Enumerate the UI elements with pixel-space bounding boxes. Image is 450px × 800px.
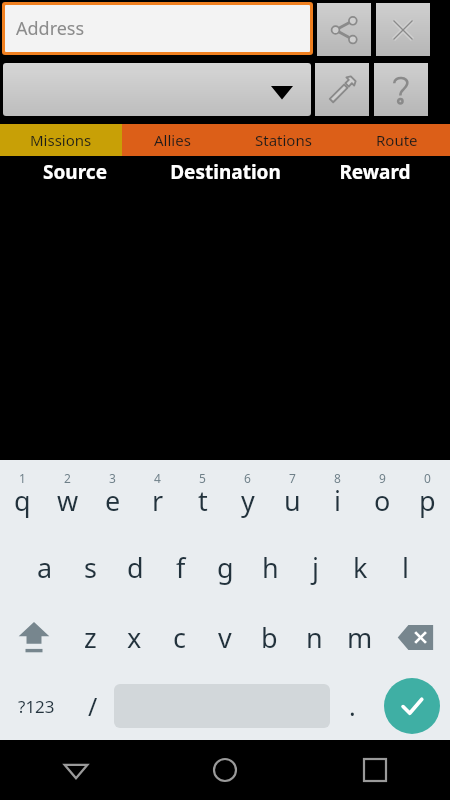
staticText: / [88,689,98,723]
button[interactable]: h [248,532,293,602]
button[interactable]: Settings [315,63,369,116]
button[interactable]: Back [0,740,150,800]
staticText: Address [16,16,85,41]
staticText: m [347,619,373,656]
button[interactable]: 1 [0,460,45,532]
staticText: t [198,482,208,519]
staticText: 2 [64,470,71,486]
button[interactable]: n [292,602,337,672]
button[interactable]: s [68,532,113,602]
button[interactable]: x [112,602,157,672]
button[interactable]: 0 [405,460,450,532]
staticText: x [127,619,142,656]
button[interactable]: ?123 [0,672,72,740]
button[interactable]: d [113,532,158,602]
staticText: n [306,619,323,656]
staticText: z [84,619,97,656]
staticText: 7 [289,470,296,486]
staticText: c [173,619,186,656]
button[interactable]: . [330,672,374,740]
button[interactable]: 4 [135,460,180,532]
button[interactable]: 2 [45,460,90,532]
button[interactable]: Allies [122,124,222,156]
staticText: Destination [170,159,281,185]
button[interactable]: b [247,602,292,672]
staticText: l [402,549,409,586]
staticText: o [374,482,391,519]
staticText: b [261,619,278,656]
staticText: q [14,482,31,519]
button[interactable]: v [202,602,247,672]
button[interactable]: 3 [90,460,135,532]
button[interactable]: m [337,602,382,672]
staticText: 3 [109,470,116,486]
staticText: 0 [424,470,431,486]
button[interactable]: Backspace [382,602,450,672]
staticText: Missions [30,130,92,150]
staticText: Route [376,130,418,150]
button[interactable]: f [158,532,203,602]
button[interactable]: Share [317,3,371,56]
staticText: Stations [255,130,312,150]
staticText: 5 [199,470,206,486]
staticText: ?123 [18,695,55,718]
staticText: p [419,482,436,519]
button[interactable]: Home [150,740,300,800]
staticText: r [152,482,164,519]
staticText: Source [43,159,107,185]
staticText: u [284,482,301,519]
button[interactable]: Address [5,5,310,52]
button[interactable]: Route [344,124,450,156]
staticText: w [57,482,79,519]
button[interactable]: Close [376,3,430,56]
staticText: j [312,549,319,586]
button[interactable]: 8 [315,460,360,532]
staticText: s [84,549,97,586]
button[interactable]: z [68,602,112,672]
button[interactable]: Missions [0,124,122,156]
staticText: 6 [244,470,251,486]
staticText: i [334,482,341,519]
staticText: Reward [339,159,411,185]
button[interactable] [3,63,311,116]
staticText: 4 [154,470,161,486]
button[interactable]: j [293,532,338,602]
staticText: Allies [154,130,191,150]
staticText: k [353,549,368,586]
staticText: v [218,619,232,656]
button[interactable]: l [383,532,428,602]
staticText: 9 [379,470,386,486]
button[interactable]: c [157,602,202,672]
button[interactable]: k [338,532,383,602]
button[interactable]: 9 [360,460,405,532]
button[interactable]: a [22,532,68,602]
staticText: e [105,482,121,519]
button[interactable]: 6 [225,460,270,532]
button[interactable]: Enter [374,672,450,740]
staticText: 8 [334,470,341,486]
button[interactable]: Shift [0,602,68,672]
staticText: 1 [19,470,26,486]
button[interactable]: 5 [180,460,225,532]
staticText: h [262,549,279,586]
staticText: f [176,549,186,586]
button[interactable]: / [72,672,114,740]
button[interactable]: 7 [270,460,315,532]
staticText: y [241,482,255,519]
button[interactable]: Help [374,63,428,116]
staticText: a [37,549,53,586]
button[interactable]: g [203,532,248,602]
staticText: d [127,549,144,586]
button[interactable]: Recents [300,740,450,800]
button[interactable]: Stations [222,124,344,156]
staticText: g [217,549,234,586]
staticText: . [349,689,356,723]
